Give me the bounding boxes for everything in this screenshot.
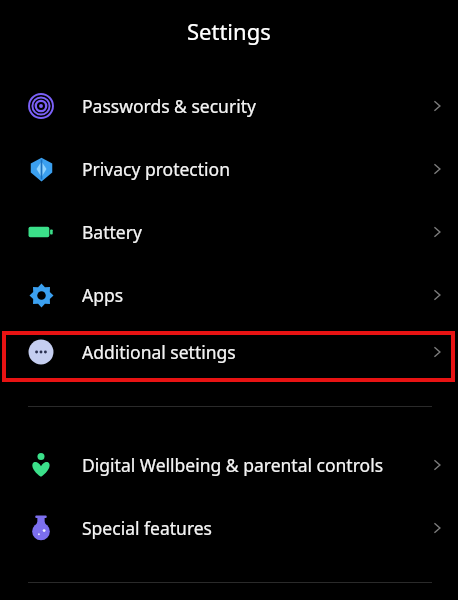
- staticText: Special features: [82, 516, 416, 540]
- button[interactable]: Special features: [0, 496, 458, 559]
- button[interactable]: Privacy protection: [0, 137, 458, 200]
- staticText: Apps: [82, 283, 416, 307]
- staticText: Privacy protection: [82, 157, 416, 181]
- button[interactable]: Additional settings: [0, 326, 458, 378]
- staticText: Digital Wellbeing & parental controls: [82, 453, 416, 477]
- button[interactable]: Battery: [0, 200, 458, 263]
- button[interactable]: Apps: [0, 263, 458, 326]
- staticText: Additional settings: [82, 340, 416, 364]
- staticText: Settings: [187, 16, 271, 46]
- staticText: Battery: [82, 220, 416, 244]
- button[interactable]: Digital Wellbeing & parental controls: [0, 433, 458, 496]
- staticText: Passwords & security: [82, 94, 416, 118]
- button[interactable]: Passwords & security: [0, 74, 458, 137]
